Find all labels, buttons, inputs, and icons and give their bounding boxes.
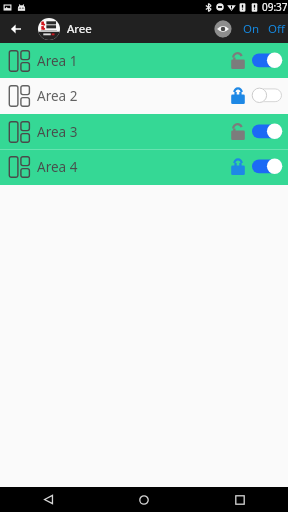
- button[interactable]: Unlocked: [227, 50, 249, 72]
- button[interactable]: Area 2: [0, 78, 288, 114]
- button[interactable]: Area 1: [0, 43, 288, 78]
- button[interactable]: Recent apps: [216, 487, 264, 512]
- button[interactable]: Back: [24, 487, 72, 512]
- button[interactable]: Area 4 switch: [249, 155, 285, 179]
- staticText: Area 3: [37, 123, 78, 141]
- button[interactable]: Area 1 switch: [249, 49, 285, 73]
- button[interactable]: Toggle visibility: [213, 19, 232, 38]
- staticText: Area 4: [37, 158, 78, 176]
- staticText: Off: [268, 21, 285, 37]
- button[interactable]: Area 4: [0, 149, 288, 185]
- button[interactable]: Locked: [227, 85, 249, 107]
- button[interactable]: Locked: [227, 156, 249, 178]
- button[interactable]: Area 2 switch: [249, 84, 285, 108]
- staticText: Area 2: [37, 87, 78, 105]
- staticText: 09:37: [262, 0, 288, 14]
- staticText: On: [243, 21, 260, 37]
- button[interactable]: Home: [120, 487, 168, 512]
- button[interactable]: Area 3: [0, 114, 288, 149]
- staticText: Area 1: [37, 52, 78, 70]
- button[interactable]: Back: [4, 17, 27, 40]
- button[interactable]: On: [240, 17, 263, 41]
- button[interactable]: Unlocked: [227, 121, 249, 143]
- button[interactable]: Area 3 switch: [249, 120, 285, 144]
- staticText: Aree: [67, 21, 92, 37]
- button[interactable]: Off: [265, 17, 288, 41]
